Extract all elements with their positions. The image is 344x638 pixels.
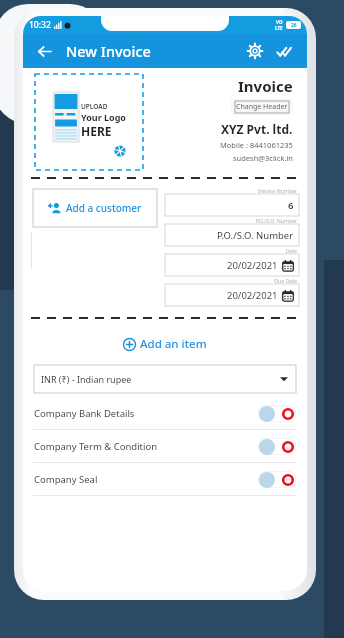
button[interactable]: 20/02/2021 [165,254,299,276]
staticText: 6 [288,199,294,212]
staticText: Due Date [165,277,297,284]
staticText: UPLOAD [81,102,108,111]
staticText: LTE [275,25,283,31]
staticText: INR (₹) - Indian rupee [41,373,132,385]
button[interactable]: Back [32,39,56,63]
staticText: P.O./S.O. Number [217,229,294,242]
button[interactable]: Company Bank Details [23,397,307,429]
staticText: VO [276,19,283,25]
staticText: Invoice Number [165,187,297,194]
button[interactable]: P.O./S.O. Number [165,224,299,246]
staticText: 10:32 [29,19,51,31]
button[interactable]: Company Seal [23,463,307,495]
staticText: sudesh@3click.in [233,153,293,163]
button[interactable]: Add an item [113,333,217,355]
staticText: Company Term & Condition [34,440,158,453]
staticText: Company Bank Details [34,407,135,420]
button[interactable]: Save invoice [272,38,298,64]
staticText: Add an item [140,336,207,352]
button[interactable]: INR (₹) - Indian rupee [34,365,296,393]
staticText: Change Header [236,102,288,112]
staticText: New Invoice [66,41,151,61]
staticText: HERE [81,123,112,139]
button[interactable]: Change Header [231,99,293,115]
staticText: XYZ Pvt. ltd. [221,121,293,137]
staticText: Date [165,247,297,254]
button[interactable]: Settings [242,38,268,64]
staticText: P.O./S.O. Number [165,217,297,224]
button[interactable]: Company Term & Condition [23,430,307,462]
staticText: Add a customer [66,201,142,215]
staticText: 20/02/2021 [227,259,278,272]
staticText: Invoice [238,76,293,96]
staticText: 26 [291,22,297,29]
staticText: 20/02/2021 [227,289,278,302]
staticText: Your Logo [81,111,126,123]
staticText: Mobile : 8441061235 [220,140,293,150]
button[interactable]: Add a customer [33,189,157,227]
staticText: Company Seal [34,473,98,486]
button[interactable]: 20/02/2021 [165,284,299,306]
button[interactable]: Upload your logo [35,74,143,170]
button[interactable]: 6 [165,194,299,216]
